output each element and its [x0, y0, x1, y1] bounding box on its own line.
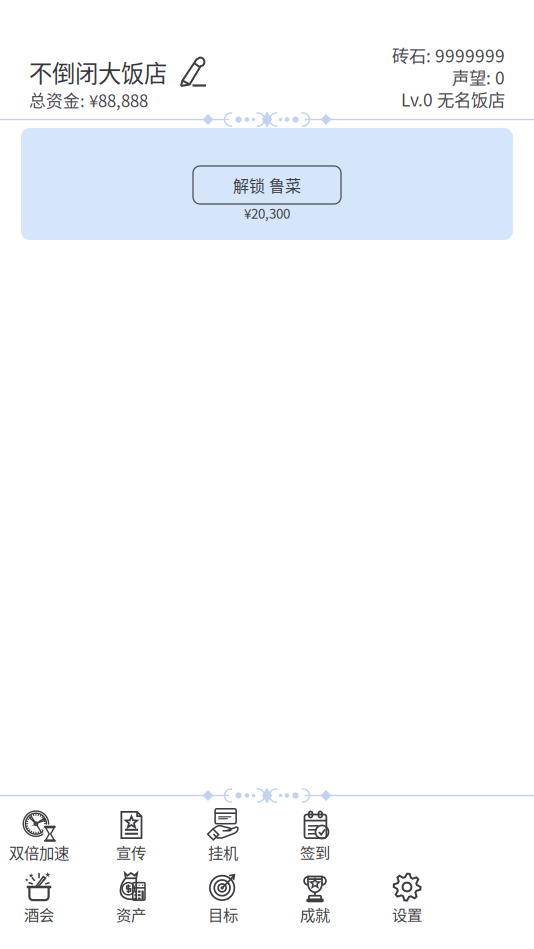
staticText: 总资金: ¥88,888	[29, 88, 148, 112]
staticText: 设置	[392, 903, 422, 925]
staticText: 目标	[208, 903, 238, 925]
staticText: 签到	[300, 841, 330, 863]
staticText: 声望: 0	[452, 64, 505, 90]
staticText: 宣传	[116, 841, 146, 863]
button[interactable]: 挂机	[177, 804, 269, 866]
button[interactable]: 双倍加速	[0, 804, 85, 866]
button[interactable]: 设置	[361, 866, 453, 928]
button[interactable]: 酒会	[0, 866, 85, 928]
button[interactable]: 资产	[85, 866, 177, 928]
staticText: 成就	[300, 903, 330, 925]
staticText: 酒会	[24, 903, 54, 925]
button[interactable]: Rename restaurant	[177, 55, 207, 89]
staticText: 挂机	[208, 841, 238, 863]
staticText: 不倒闭大饭店	[29, 55, 167, 89]
button[interactable]: 成就	[269, 866, 361, 928]
button[interactable]: 宣传	[85, 804, 177, 866]
button[interactable]: 解锁 鲁菜	[193, 166, 341, 204]
button[interactable]: 签到	[269, 804, 361, 866]
staticText: ¥20,300	[244, 203, 290, 223]
staticText: 资产	[116, 903, 146, 925]
button[interactable]: 目标	[177, 866, 269, 928]
staticText: 双倍加速	[9, 841, 69, 863]
staticText: Lv.0 无名饭店	[401, 86, 505, 112]
staticText: 砖石: 9999999	[392, 42, 505, 68]
staticText: 解锁 鲁菜	[233, 173, 301, 197]
